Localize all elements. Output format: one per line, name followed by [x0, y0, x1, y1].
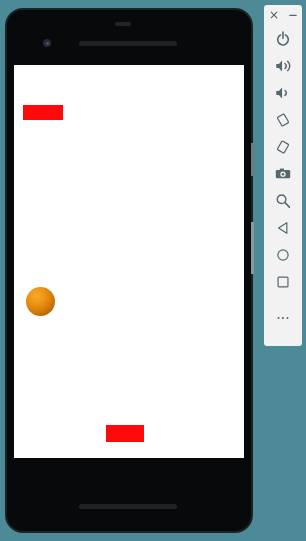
other: Ball — [26, 287, 55, 316]
button[interactable]: Close — [264, 5, 283, 25]
button[interactable]: Take screenshot — [264, 160, 302, 187]
button[interactable]: Back — [264, 214, 302, 241]
button[interactable]: Minimize — [283, 5, 302, 25]
button[interactable]: Rotate left — [264, 106, 302, 133]
button[interactable]: Rotate right — [264, 133, 302, 160]
button[interactable]: Volume down — [264, 79, 302, 106]
button[interactable]: More — [264, 304, 302, 331]
button[interactable]: Overview — [264, 268, 302, 295]
button[interactable]: Power — [264, 25, 302, 52]
button[interactable]: Home — [264, 241, 302, 268]
button[interactable]: Zoom — [264, 187, 302, 214]
button[interactable]: Volume up — [264, 52, 302, 79]
